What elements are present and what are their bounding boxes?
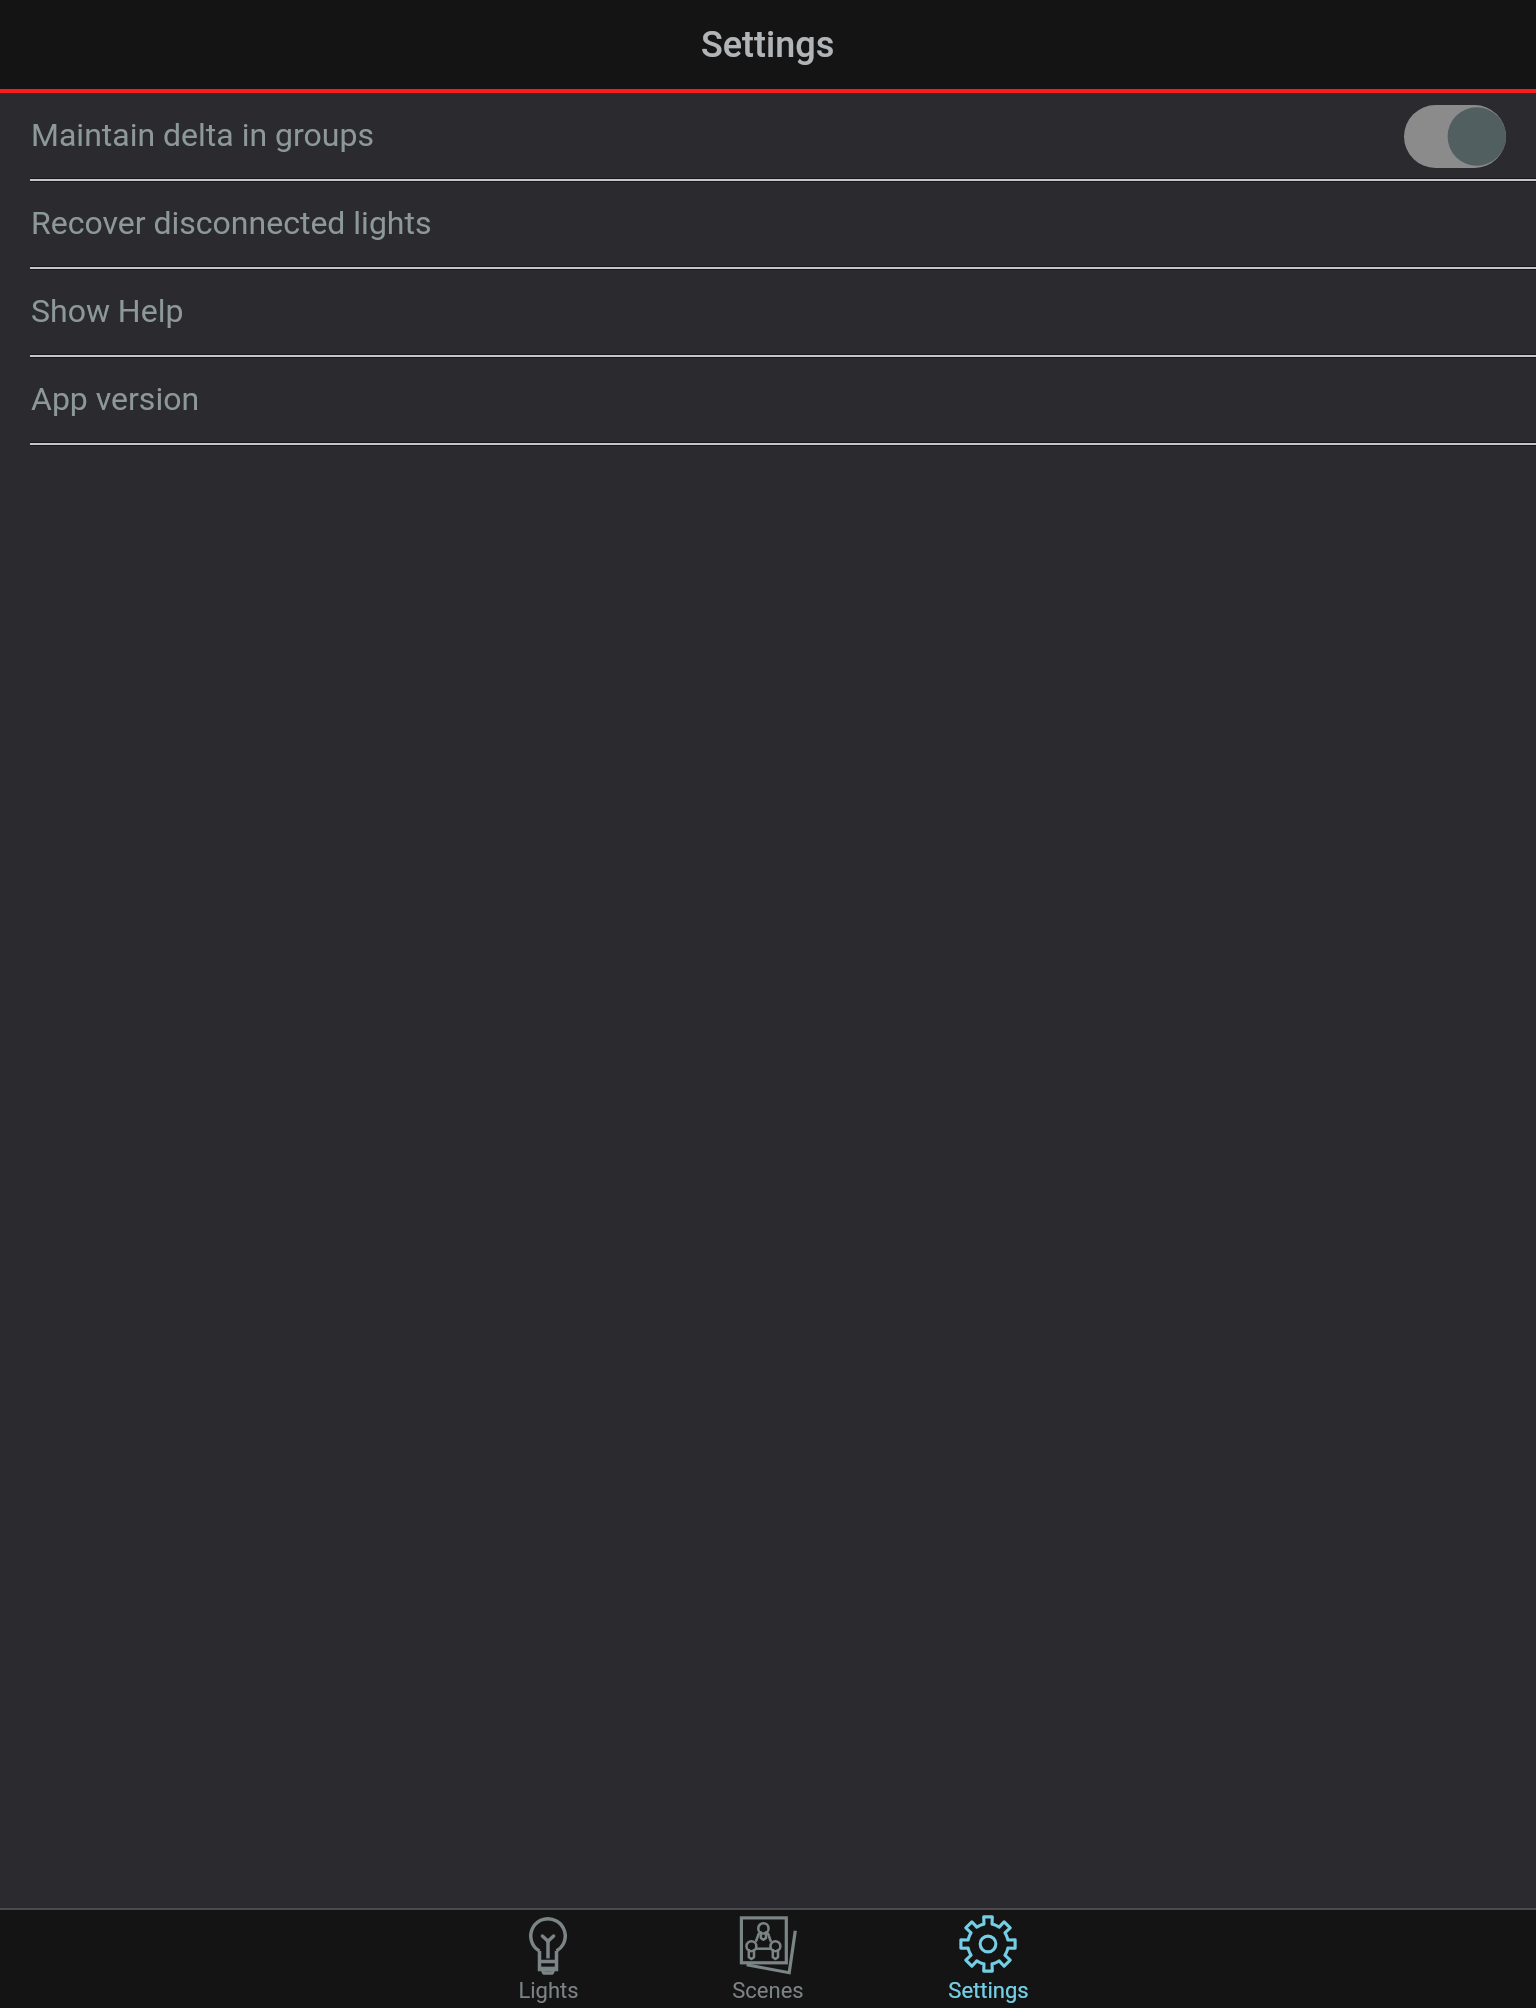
button[interactable]: Show Help <box>0 270 1536 354</box>
staticText: Show Help <box>31 292 184 330</box>
staticText: App version <box>31 380 200 418</box>
button[interactable]: Scenes <box>658 1910 878 2008</box>
button[interactable]: App version <box>0 358 1536 442</box>
staticText: Scenes <box>732 1978 804 2004</box>
button[interactable]: Toggle Maintain delta in groups <box>1404 105 1506 168</box>
staticText: Lights <box>518 1978 579 2004</box>
button[interactable]: Maintain delta in groups <box>0 94 1536 178</box>
staticText: Settings <box>701 24 835 66</box>
staticText: Recover disconnected lights <box>31 204 432 242</box>
staticText: Settings <box>948 1978 1029 2004</box>
button[interactable]: Lights <box>438 1910 658 2008</box>
button[interactable]: Recover disconnected lights <box>0 182 1536 266</box>
button[interactable]: Settings <box>878 1910 1098 2008</box>
staticText: Maintain delta in groups <box>31 116 374 154</box>
